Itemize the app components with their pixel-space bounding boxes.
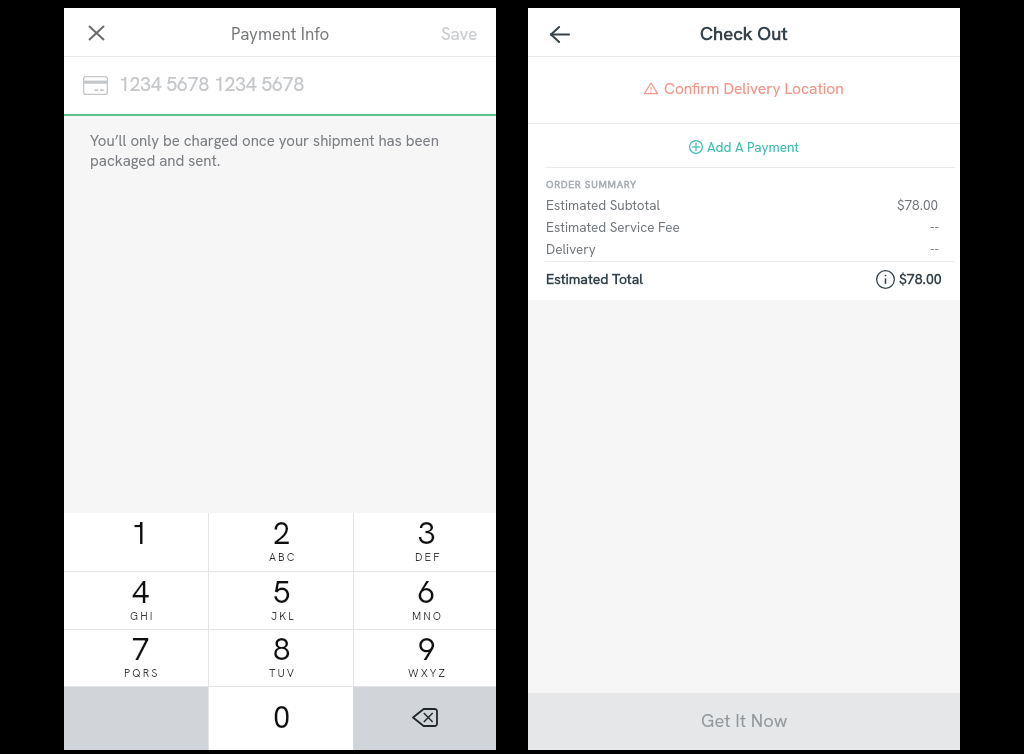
staticText: WXYZ xyxy=(408,666,448,680)
staticText: Check Out xyxy=(700,21,788,45)
staticText: Get It Now xyxy=(701,709,788,733)
button[interactable]: 6 xyxy=(354,572,496,629)
staticText: Add A Payment xyxy=(707,138,800,156)
staticText: 9 xyxy=(418,629,436,669)
button[interactable]: 4 xyxy=(64,572,208,629)
staticText: 2 xyxy=(273,513,291,553)
staticText: Estimated Subtotal xyxy=(546,196,661,214)
button[interactable]: Add A Payment xyxy=(528,124,960,167)
button[interactable]: Close xyxy=(78,15,114,51)
staticText: 3 xyxy=(418,513,436,553)
button[interactable]: 1 xyxy=(64,513,208,571)
button[interactable]: 9 xyxy=(354,630,496,686)
staticText: GHI xyxy=(130,609,155,623)
button[interactable]: Back xyxy=(541,16,577,52)
staticText: 5 xyxy=(273,572,291,612)
staticText: 1 xyxy=(131,513,149,553)
staticText: $78.00 xyxy=(899,270,942,288)
staticText: Estimated Total xyxy=(546,270,643,288)
staticText: You’ll only be charged once your shipmen… xyxy=(90,131,472,171)
button[interactable]: Price details xyxy=(876,270,895,289)
staticText: ABC xyxy=(269,550,297,564)
button[interactable]: Backspace xyxy=(353,687,496,750)
staticText: Confirm Delivery Location xyxy=(664,78,844,98)
staticText: -- xyxy=(930,240,939,258)
staticText: 8 xyxy=(273,629,291,669)
staticText: ORDER SUMMARY xyxy=(546,178,637,191)
staticText: MNO xyxy=(412,609,444,623)
staticText: DEF xyxy=(415,550,442,564)
staticText: PQRS xyxy=(124,666,160,680)
staticText: TUV xyxy=(269,666,297,680)
staticText: Delivery xyxy=(546,240,596,258)
staticText: $78.00 xyxy=(897,196,939,214)
button[interactable]: 3 xyxy=(354,513,496,571)
button[interactable]: Save xyxy=(431,15,496,53)
button[interactable]: 2 xyxy=(209,513,353,571)
staticText: 4 xyxy=(132,572,150,612)
button[interactable]: 5 xyxy=(209,572,353,629)
staticText: JKL xyxy=(271,609,296,623)
staticText: 0 xyxy=(273,697,291,737)
staticText: 1234 5678 1234 5678 xyxy=(119,72,305,97)
staticText: Estimated Service Fee xyxy=(546,218,680,236)
staticText: Save xyxy=(441,23,478,45)
button[interactable]: 8 xyxy=(209,630,353,686)
staticText: 6 xyxy=(418,572,436,612)
button[interactable]: Confirm Delivery Location xyxy=(528,57,960,123)
staticText: -- xyxy=(930,218,939,236)
staticText: Payment Info xyxy=(231,23,330,45)
button[interactable]: 7 xyxy=(64,630,208,686)
button[interactable]: Get It Now xyxy=(528,693,960,750)
button[interactable]: 0 xyxy=(209,687,353,750)
staticText: 7 xyxy=(132,629,150,669)
